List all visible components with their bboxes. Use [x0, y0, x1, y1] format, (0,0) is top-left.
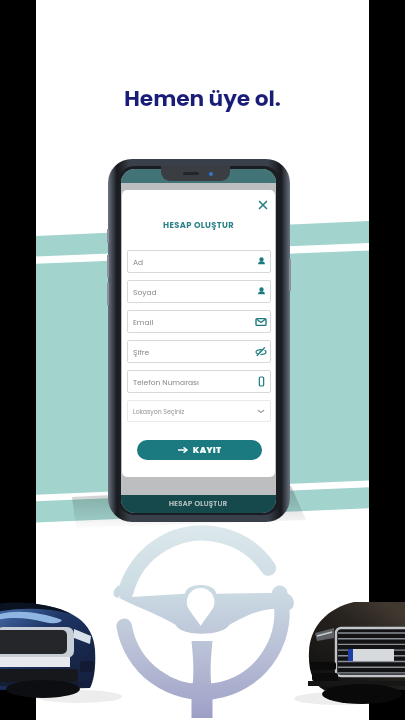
button[interactable]: Soyad — [127, 280, 271, 303]
staticText: Email — [133, 317, 256, 327]
staticText: Hemen üye ol. — [124, 83, 281, 114]
staticText: Soyad — [133, 287, 257, 297]
button[interactable]: Lokasyon Seçiniz — [127, 400, 271, 422]
button[interactable]: KAYIT — [137, 440, 262, 460]
button[interactable]: Ad — [127, 250, 271, 273]
staticText: Telefon Numarası — [133, 377, 257, 387]
button[interactable]: Kapat — [257, 199, 269, 211]
staticText: HESAP OLUŞTUR — [122, 219, 275, 231]
staticText: Ad — [133, 257, 257, 267]
staticText: Şifre — [133, 347, 256, 357]
button[interactable]: Email — [127, 310, 271, 333]
button[interactable]: Şifre — [127, 340, 271, 363]
staticText: KAYIT — [193, 444, 222, 456]
staticText: HESAP OLUŞTUR — [169, 499, 228, 509]
button[interactable]: Telefon Numarası — [127, 370, 271, 393]
staticText: Lokasyon Seçiniz — [133, 407, 257, 416]
